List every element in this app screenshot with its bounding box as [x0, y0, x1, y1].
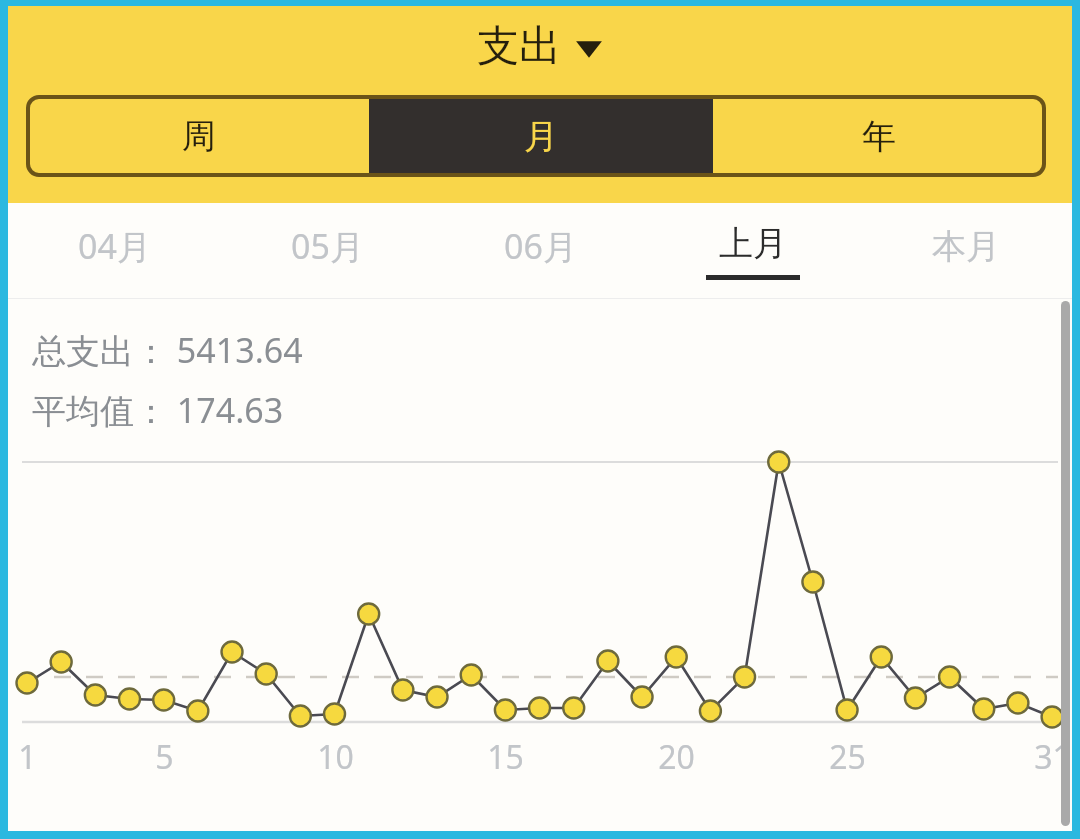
staticText: 5 [155, 735, 174, 779]
button[interactable]: 本月 [859, 203, 1072, 299]
button[interactable]: 上月 [646, 203, 859, 299]
staticText: 15 [487, 735, 524, 779]
staticText: 月 [524, 115, 558, 158]
staticText: 周 [182, 115, 216, 158]
staticText: 20 [658, 735, 695, 779]
button[interactable]: 05月 [220, 203, 433, 299]
staticText: 支出 [477, 20, 561, 73]
button[interactable]: 年 [713, 97, 1044, 175]
staticText: 1 [18, 735, 37, 779]
staticText: 06月 [504, 223, 577, 269]
staticText: 25 [829, 735, 866, 779]
button[interactable]: 周 [28, 97, 369, 175]
button[interactable]: 月 [369, 97, 713, 175]
button[interactable]: 06月 [433, 203, 646, 299]
staticText: 10 [317, 735, 354, 779]
staticText: 04月 [78, 223, 151, 269]
staticText: 31 [1034, 735, 1071, 779]
staticText: 平均值： 174.63 [32, 387, 284, 433]
staticText: 总支出： 5413.64 [32, 327, 303, 373]
staticText: 本月 [932, 225, 1000, 268]
staticText: 上月 [719, 222, 787, 265]
button[interactable]: 支出 [469, 16, 611, 77]
staticText: 年 [862, 115, 896, 158]
staticText: 05月 [291, 223, 364, 269]
button[interactable]: 04月 [8, 203, 220, 299]
other: Change category [575, 35, 603, 59]
